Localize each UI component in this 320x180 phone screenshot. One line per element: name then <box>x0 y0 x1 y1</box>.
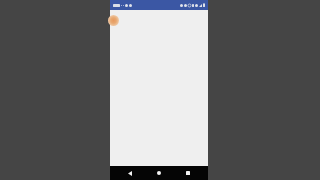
button[interactable]: Back <box>121 166 139 180</box>
button[interactable]: Profile <box>108 15 119 26</box>
button[interactable]: Recent apps <box>179 166 197 180</box>
button[interactable]: Home <box>150 166 168 180</box>
